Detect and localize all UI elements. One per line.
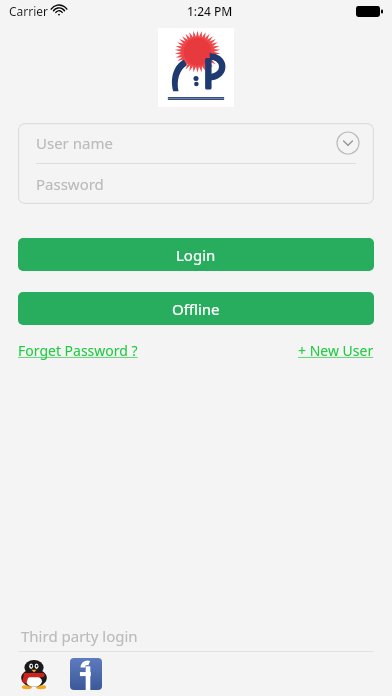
button[interactable]: Password <box>18 164 374 204</box>
button[interactable]: Login with Facebook <box>70 658 102 690</box>
staticText: Carrier <box>9 3 49 19</box>
button[interactable]: Show saved accounts <box>336 131 360 155</box>
button[interactable]: Forget Password ? <box>18 341 138 360</box>
staticText: 1:24 PM <box>187 3 233 19</box>
button[interactable]: Offline <box>18 292 374 325</box>
button[interactable]: User name <box>18 123 374 163</box>
staticText: Third party login <box>21 626 138 646</box>
button[interactable]: Login <box>18 238 374 271</box>
staticText: + New User <box>298 341 374 360</box>
button[interactable]: + New User <box>298 341 374 360</box>
staticText: Offline <box>172 299 220 319</box>
button[interactable]: Login with QQ <box>18 658 50 690</box>
staticText: User name <box>36 133 113 153</box>
staticText: Password <box>36 174 104 194</box>
staticText: Login <box>176 245 216 265</box>
staticText: Forget Password ? <box>18 341 138 360</box>
